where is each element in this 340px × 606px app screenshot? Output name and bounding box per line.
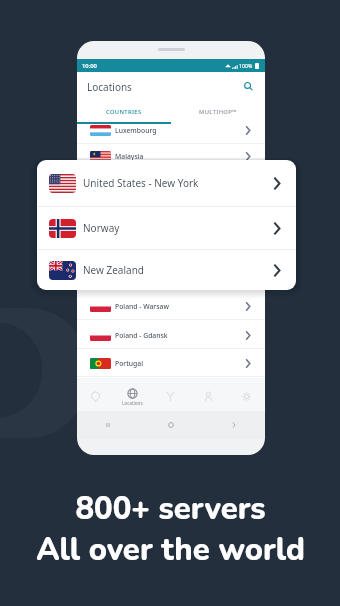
staticText: 800+ servers (75, 488, 266, 530)
button[interactable]: Poland - Warsaw (77, 292, 265, 320)
button[interactable]: Home (139, 411, 202, 439)
button[interactable]: Malaysia (77, 142, 265, 170)
staticText: Norway (83, 221, 120, 235)
staticText: Poland - Gdansk (115, 331, 168, 340)
button[interactable]: Netherlands (77, 228, 265, 256)
staticText: Portugal (115, 359, 143, 368)
staticText: United States - New York (83, 176, 199, 190)
staticText: COUNTRIES (106, 108, 142, 116)
button[interactable]: Protection (77, 378, 114, 411)
button[interactable]: Portugal (77, 349, 265, 377)
button[interactable]: Moldova (77, 199, 265, 227)
button[interactable]: Poland - Gdansk (77, 321, 265, 349)
button[interactable]: Mexico (77, 171, 265, 199)
staticText: New Zealand (83, 263, 144, 277)
button[interactable]: COUNTRIES (77, 101, 171, 124)
button[interactable]: Search (242, 80, 255, 93)
button[interactable]: Norway (77, 256, 265, 284)
staticText: 10:00 (82, 62, 97, 70)
button[interactable]: MULTIHOP™ (171, 101, 265, 124)
staticText: Luxembourg (115, 126, 157, 135)
button[interactable]: Luxembourg (77, 116, 265, 144)
staticText: Locations (87, 80, 132, 94)
staticText: 100% (239, 62, 253, 69)
staticText: Poland - Warsaw (115, 302, 169, 311)
staticText: Locations (122, 400, 143, 406)
staticText: Mexico (115, 181, 139, 190)
staticText: Norway (115, 266, 141, 275)
button[interactable]: Locations (114, 378, 151, 411)
button[interactable]: Recents (77, 411, 139, 439)
button[interactable]: Settings (227, 378, 265, 411)
staticText: Malaysia (115, 152, 144, 161)
button[interactable]: Account (189, 378, 227, 411)
staticText: All over the world (36, 529, 305, 571)
button[interactable]: Norway (37, 207, 296, 249)
staticText: MULTIHOP™ (199, 108, 237, 116)
button[interactable]: United States - New York (37, 160, 296, 206)
button[interactable]: New Zealand (37, 250, 296, 290)
